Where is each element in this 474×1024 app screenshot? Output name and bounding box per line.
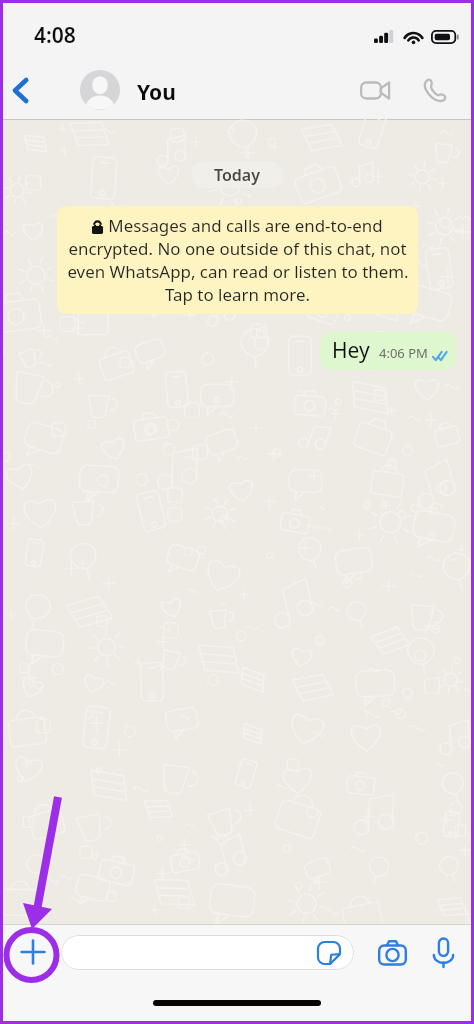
button[interactable]: Video call (352, 67, 398, 113)
staticText: Tap to learn more. (165, 283, 310, 306)
button[interactable]: Voice call (412, 67, 458, 113)
staticText: You (137, 78, 176, 107)
staticText: Today (214, 164, 261, 186)
staticText: Hey (332, 336, 370, 365)
staticText: even WhatsApp, can read or listen to the… (67, 260, 409, 283)
button[interactable] (80, 70, 120, 110)
staticText: 4:06 PM (379, 344, 428, 362)
staticText: encrypted. No one outside of this chat, … (68, 237, 407, 260)
button[interactable]: Attach (12, 931, 54, 973)
button[interactable]: Camera (371, 931, 413, 973)
button[interactable]: Voice message (423, 932, 463, 972)
button[interactable]: Hey (332, 336, 447, 365)
button[interactable]: Back (1, 71, 39, 109)
staticText: Messages and calls are end-to-end (108, 214, 383, 237)
button[interactable]: Messages and calls are end-to-end (61, 214, 414, 306)
staticText: 4:08 (34, 21, 76, 50)
button[interactable]: Today (214, 164, 261, 186)
button[interactable] (61, 935, 354, 970)
